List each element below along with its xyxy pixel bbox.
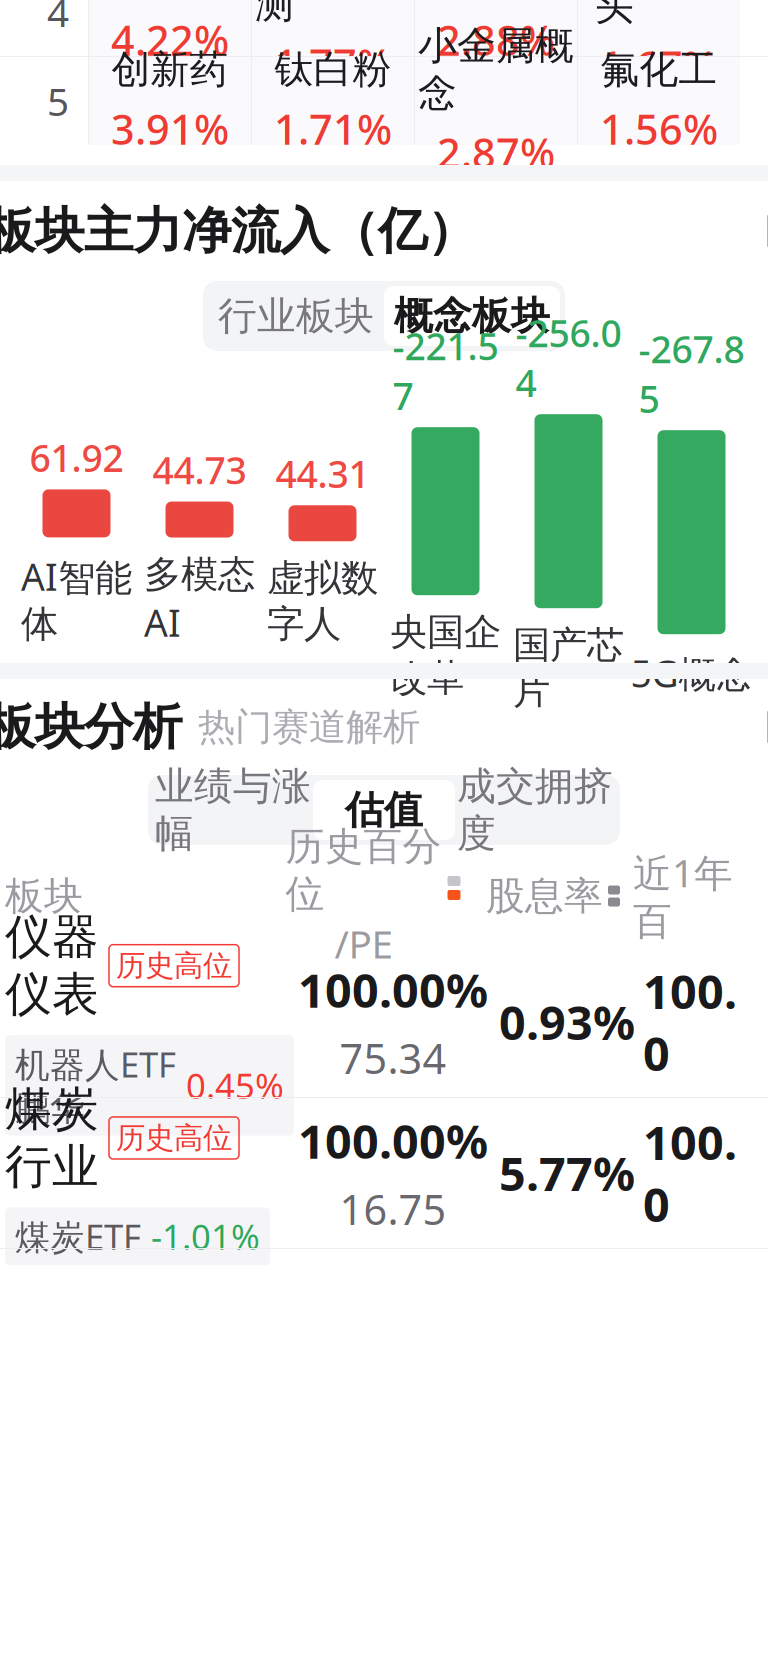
staticText: 股息率: [486, 872, 603, 920]
staticText: 100.00%: [298, 959, 488, 1021]
staticText: 61.92: [29, 433, 123, 482]
button[interactable]: 钛白粉: [252, 57, 414, 145]
staticText: -256.04: [515, 308, 621, 407]
staticText: 创新药: [111, 46, 228, 93]
staticText: 1.71%: [274, 101, 392, 156]
button[interactable]: 氟化工: [578, 57, 740, 145]
button[interactable]: 板块主力净流入（亿）: [0, 181, 768, 281]
staticText: -267.85: [638, 324, 744, 423]
staticText: 气溶胶检测: [255, 0, 411, 28]
staticText: 估值: [345, 786, 423, 834]
staticText: -221.57: [392, 321, 498, 420]
button[interactable]: 业绩与涨幅: [153, 780, 313, 840]
staticText: 历史高位: [116, 948, 232, 984]
staticText: /PE: [334, 918, 392, 969]
staticText: 成交拥挤度: [457, 762, 613, 857]
staticText: 4.22%: [111, 12, 229, 67]
staticText: 煤炭ETF: [15, 1213, 141, 1259]
staticText: 100.0: [643, 960, 737, 1084]
staticText: AI智能体: [21, 551, 132, 647]
staticText: 虚拟数字人: [267, 555, 378, 647]
staticText: 100.00%: [298, 1110, 488, 1172]
staticText: 3.91%: [111, 101, 229, 156]
staticText: 钛白粉: [274, 46, 391, 93]
button[interactable]: 成交拥挤度: [455, 780, 615, 840]
staticText: 5: [47, 75, 69, 127]
staticText: 2.88%: [437, 12, 555, 67]
button[interactable]: 股息率: [473, 872, 633, 920]
staticText: 4: [47, 0, 69, 38]
staticText: 1.67%: [600, 38, 718, 93]
button[interactable]: 概念板块: [384, 286, 560, 346]
button[interactable]: 板块分析: [0, 679, 768, 775]
button[interactable]: 行业板块: [208, 286, 384, 346]
staticText: 历史高位: [116, 1120, 232, 1156]
staticText: 100.0: [643, 1111, 737, 1235]
staticText: 板块主力净流入（亿）: [0, 201, 476, 261]
staticText: 热门赛道解析: [198, 704, 420, 750]
staticText: 多模态AI: [144, 552, 255, 647]
staticText: 氟化工: [600, 46, 717, 93]
button[interactable]: 煤炭行业: [0, 1098, 768, 1248]
staticText: 行业板块: [218, 292, 374, 340]
button[interactable]: 估值: [313, 780, 455, 840]
staticText: 44.73: [152, 445, 246, 495]
staticText: 0.93%: [499, 991, 635, 1053]
button[interactable]: 小金属概念: [415, 57, 577, 145]
staticText: 0.45%: [186, 1062, 284, 1108]
staticText: 44.31: [275, 449, 369, 498]
staticText: 业绩与涨幅: [155, 762, 311, 857]
staticText: 概念板块: [394, 292, 550, 340]
staticText: 16.75: [339, 1181, 446, 1236]
staticText: 近1年百: [633, 847, 733, 945]
staticText: 央国企改革: [390, 609, 501, 701]
staticText: 仪器仪表: [5, 908, 99, 1023]
staticText: 板块: [5, 872, 83, 920]
staticText: 1.56%: [600, 101, 718, 156]
button[interactable]: 单抗概念: [89, 0, 251, 56]
button[interactable]: 3D摄像头: [578, 0, 740, 56]
staticText: 5G概念: [630, 648, 752, 698]
staticText: 1.77%: [274, 36, 392, 91]
button[interactable]: 历史百分位: [273, 823, 473, 969]
staticText: 2.87%: [437, 125, 555, 180]
staticText: -1.01%: [151, 1213, 260, 1259]
staticText: 历史百分位: [285, 823, 441, 918]
staticText: 国产芯片: [513, 622, 624, 714]
button[interactable]: 量子科技: [415, 0, 577, 56]
button[interactable]: 创新药: [89, 57, 251, 145]
staticText: 75.34: [339, 1030, 446, 1085]
staticText: 煤炭行业: [5, 1081, 99, 1195]
button[interactable]: 气溶胶检测: [252, 0, 414, 56]
staticText: 小金属概念: [418, 22, 574, 117]
staticText: 板块分析: [0, 697, 182, 757]
button[interactable]: 仪器仪表: [0, 947, 768, 1097]
staticText: 3D摄像头: [595, 0, 723, 30]
staticText: 5.77%: [499, 1142, 635, 1204]
staticText: 机器人ETF鹏华: [15, 1041, 176, 1130]
